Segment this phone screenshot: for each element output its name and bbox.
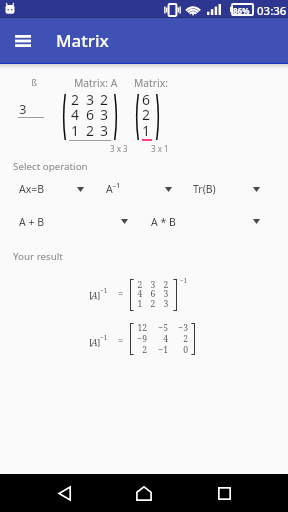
- staticText: 03:36: [257, 3, 287, 19]
- staticText: A + B: [19, 215, 45, 229]
- staticText: 1: [66, 121, 84, 140]
- button[interactable]: Back: [50, 479, 78, 507]
- staticText: 2: [158, 279, 174, 291]
- staticText: 4: [132, 288, 148, 300]
- button[interactable]: Ax=B: [11, 172, 93, 199]
- staticText: −1: [100, 333, 108, 342]
- staticText: 86%: [233, 5, 250, 16]
- staticText: Tr(B): [193, 182, 216, 196]
- button[interactable]: A + B: [11, 205, 137, 232]
- staticText: =: [118, 287, 124, 300]
- staticText: Matrix: [56, 29, 109, 52]
- staticText: 3 x 1: [151, 143, 169, 154]
- staticText: Matrix: A: [74, 76, 118, 90]
- staticText: 4: [66, 105, 84, 124]
- staticText: 6: [81, 105, 99, 124]
- staticText: 2: [81, 121, 99, 140]
- staticText: 3: [158, 288, 174, 300]
- staticText: 2: [66, 90, 84, 109]
- staticText: A: [91, 289, 98, 302]
- button[interactable]: Recent apps: [210, 479, 238, 507]
- staticText: 2: [95, 90, 113, 109]
- staticText: 2: [127, 344, 147, 356]
- staticText: 3: [19, 100, 27, 118]
- button[interactable]: A⁻¹: [98, 172, 181, 199]
- staticText: 3: [95, 121, 113, 140]
- staticText: ]: [97, 289, 101, 302]
- staticText: 3: [95, 105, 113, 124]
- staticText: 3 x 3: [110, 143, 128, 154]
- staticText: 3: [158, 298, 174, 310]
- staticText: 4: [148, 333, 168, 345]
- staticText: 12: [127, 322, 147, 334]
- staticText: [: [89, 289, 93, 302]
- staticText: −9: [127, 333, 147, 345]
- staticText: A: [91, 336, 98, 349]
- staticText: 0: [168, 344, 188, 356]
- staticText: −5: [148, 322, 168, 334]
- staticText: [: [89, 336, 93, 349]
- staticText: −1: [100, 286, 108, 295]
- staticText: 2: [137, 105, 155, 124]
- staticText: 2: [145, 298, 161, 310]
- staticText: −3: [168, 322, 188, 334]
- staticText: −1: [180, 276, 188, 284]
- staticText: Select operation: [13, 160, 88, 173]
- staticText: 1: [132, 298, 148, 310]
- staticText: 6: [137, 90, 155, 109]
- staticText: 2: [132, 279, 148, 291]
- staticText: Ax=B: [19, 182, 45, 196]
- staticText: A * B: [151, 215, 176, 229]
- button[interactable]: Home: [130, 479, 158, 507]
- staticText: Your result: [13, 250, 63, 263]
- staticText: 3: [81, 90, 99, 109]
- button[interactable]: 3: [14, 96, 48, 122]
- staticText: ]: [97, 336, 101, 349]
- staticText: 2: [168, 333, 188, 345]
- button[interactable]: A * B: [143, 205, 269, 232]
- staticText: =: [118, 334, 124, 347]
- staticText: −1: [148, 344, 168, 356]
- staticText: A⁻¹: [106, 182, 120, 196]
- staticText: 3: [145, 279, 161, 291]
- button[interactable]: Open navigation menu: [7, 25, 39, 57]
- staticText: Matrix:: [134, 76, 168, 90]
- staticText: ß: [24, 76, 44, 88]
- staticText: 6: [145, 288, 161, 300]
- button[interactable]: Tr(B): [185, 172, 269, 199]
- staticText: 1: [137, 121, 155, 140]
